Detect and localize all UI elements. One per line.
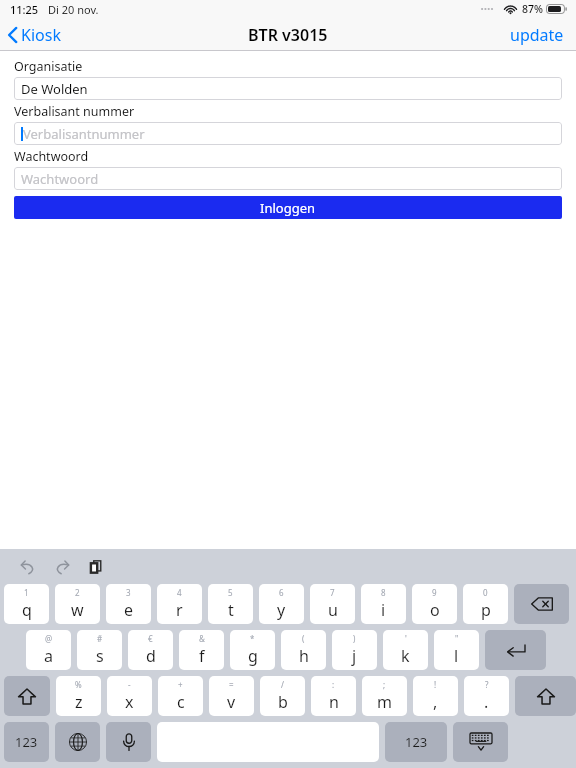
button[interactable]: !: [413, 676, 458, 716]
staticText: &: [199, 633, 205, 644]
staticText: /: [281, 679, 284, 690]
button[interactable]: Undo: [14, 553, 42, 581]
staticText: k: [401, 645, 410, 667]
staticText: #: [97, 633, 103, 644]
button[interactable]: Shift: [515, 676, 576, 716]
staticText: BTR v3015: [248, 24, 328, 46]
button[interactable]: 7: [310, 584, 355, 624]
button[interactable]: 1: [4, 584, 49, 624]
staticText: 123: [405, 733, 428, 751]
staticText: ': [405, 633, 407, 644]
staticText: 4: [177, 587, 182, 598]
button[interactable]: Kiosk: [0, 18, 69, 51]
button[interactable]: Inloggen: [14, 196, 562, 219]
button[interactable]: &: [179, 630, 224, 670]
staticText: v: [227, 691, 236, 713]
staticText: ,: [433, 691, 438, 713]
button[interactable]: Hide keyboard: [453, 722, 508, 762]
staticText: Verbalisant nummer: [14, 103, 135, 120]
staticText: w: [71, 599, 84, 621]
button[interactable]: /: [260, 676, 305, 716]
button[interactable]: +: [158, 676, 203, 716]
button[interactable]: Dictation: [106, 722, 151, 762]
staticText: €: [148, 633, 153, 644]
button[interactable]: 123: [4, 722, 49, 762]
staticText: Wachtwoord: [14, 148, 89, 165]
button[interactable]: 0: [463, 584, 508, 624]
staticText: j: [352, 645, 357, 667]
button[interactable]: 5: [208, 584, 253, 624]
staticText: :: [332, 679, 335, 690]
staticText: Di 20 nov.: [48, 2, 99, 17]
staticText: f: [199, 645, 205, 667]
button[interactable]: Return: [485, 630, 546, 670]
button[interactable]: ;: [362, 676, 407, 716]
staticText: 0: [483, 587, 488, 598]
staticText: h: [299, 645, 309, 667]
button[interactable]: 8: [361, 584, 406, 624]
staticText: (: [302, 633, 305, 644]
button[interactable]: 2: [55, 584, 100, 624]
button[interactable]: €: [128, 630, 173, 670]
staticText: 87%: [522, 2, 543, 16]
button[interactable]: :: [311, 676, 356, 716]
staticText: 123: [15, 733, 38, 751]
button[interactable]: Shift: [4, 676, 50, 716]
staticText: o: [430, 599, 440, 621]
button[interactable]: ?: [464, 676, 509, 716]
staticText: !: [434, 679, 437, 690]
staticText: -: [128, 679, 131, 690]
button[interactable]: 3: [106, 584, 151, 624]
staticText: z: [75, 691, 83, 713]
staticText: De Wolden: [21, 80, 88, 98]
button[interactable]: 123: [385, 722, 447, 762]
staticText: s: [96, 645, 104, 667]
button[interactable]: Verbalisantnummer: [14, 122, 562, 145]
staticText: m: [377, 691, 392, 713]
staticText: Wachtwoord: [21, 170, 99, 188]
button[interactable]: ): [332, 630, 377, 670]
staticText: g: [248, 645, 258, 667]
button[interactable]: %: [56, 676, 101, 716]
button[interactable]: @: [26, 630, 71, 670]
staticText: 6: [279, 587, 284, 598]
staticText: .: [484, 691, 489, 713]
button[interactable]: -: [107, 676, 152, 716]
staticText: 3: [126, 587, 131, 598]
staticText: l: [454, 645, 459, 667]
staticText: @: [45, 633, 53, 644]
staticText: c: [177, 691, 185, 713]
button[interactable]: Wachtwoord: [14, 167, 562, 190]
staticText: 11:25: [10, 2, 39, 17]
button[interactable]: *: [230, 630, 275, 670]
staticText: Kiosk: [21, 24, 61, 46]
button[interactable]: Redo: [48, 553, 76, 581]
button[interactable]: De Wolden: [14, 77, 562, 100]
staticText: y: [277, 599, 286, 621]
staticText: ): [353, 633, 356, 644]
button[interactable]: Change keyboard: [55, 722, 100, 762]
button[interactable]: =: [209, 676, 254, 716]
staticText: d: [146, 645, 156, 667]
staticText: 5: [228, 587, 233, 598]
button[interactable]: update: [498, 18, 576, 51]
staticText: ;: [383, 679, 386, 690]
staticText: r: [176, 599, 183, 621]
staticText: a: [44, 645, 53, 667]
staticText: 8: [381, 587, 386, 598]
button[interactable]: ': [383, 630, 428, 670]
button[interactable]: ": [434, 630, 479, 670]
staticText: 1: [24, 587, 29, 598]
staticText: t: [228, 599, 234, 621]
button[interactable]: #: [77, 630, 122, 670]
button[interactable]: 9: [412, 584, 457, 624]
button[interactable]: Backspace: [514, 584, 569, 624]
staticText: u: [328, 599, 338, 621]
button[interactable]: 4: [157, 584, 202, 624]
button[interactable]: (: [281, 630, 326, 670]
button[interactable]: Paste: [82, 553, 110, 581]
staticText: =: [229, 679, 234, 690]
button[interactable]: 6: [259, 584, 304, 624]
staticText: ?: [485, 679, 489, 690]
